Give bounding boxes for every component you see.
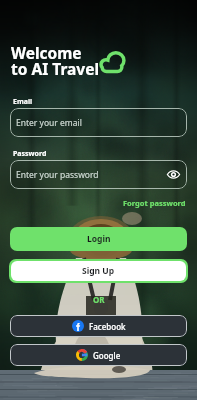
button[interactable]: Forgot password xyxy=(123,198,186,208)
staticText: Password xyxy=(13,149,47,159)
staticText: Sign Up xyxy=(82,265,115,277)
staticText: Enter your password xyxy=(16,169,99,181)
button[interactable]: Sign Up xyxy=(11,261,186,281)
button[interactable]: Show password xyxy=(167,168,180,181)
staticText: Login xyxy=(87,233,111,245)
staticText: Google xyxy=(93,350,121,361)
staticText: Facebook xyxy=(89,321,126,332)
staticText: OR xyxy=(93,294,105,305)
button[interactable]: Facebook xyxy=(10,315,187,337)
button[interactable]: Enter your password xyxy=(10,160,187,189)
staticText: Welcome to AI Travel xyxy=(11,42,100,79)
button[interactable]: Enter your email xyxy=(10,108,187,137)
staticText: Email xyxy=(13,97,33,107)
staticText: Enter your email xyxy=(16,117,82,129)
button[interactable]: Google xyxy=(10,344,187,366)
button[interactable]: Login xyxy=(10,227,187,251)
